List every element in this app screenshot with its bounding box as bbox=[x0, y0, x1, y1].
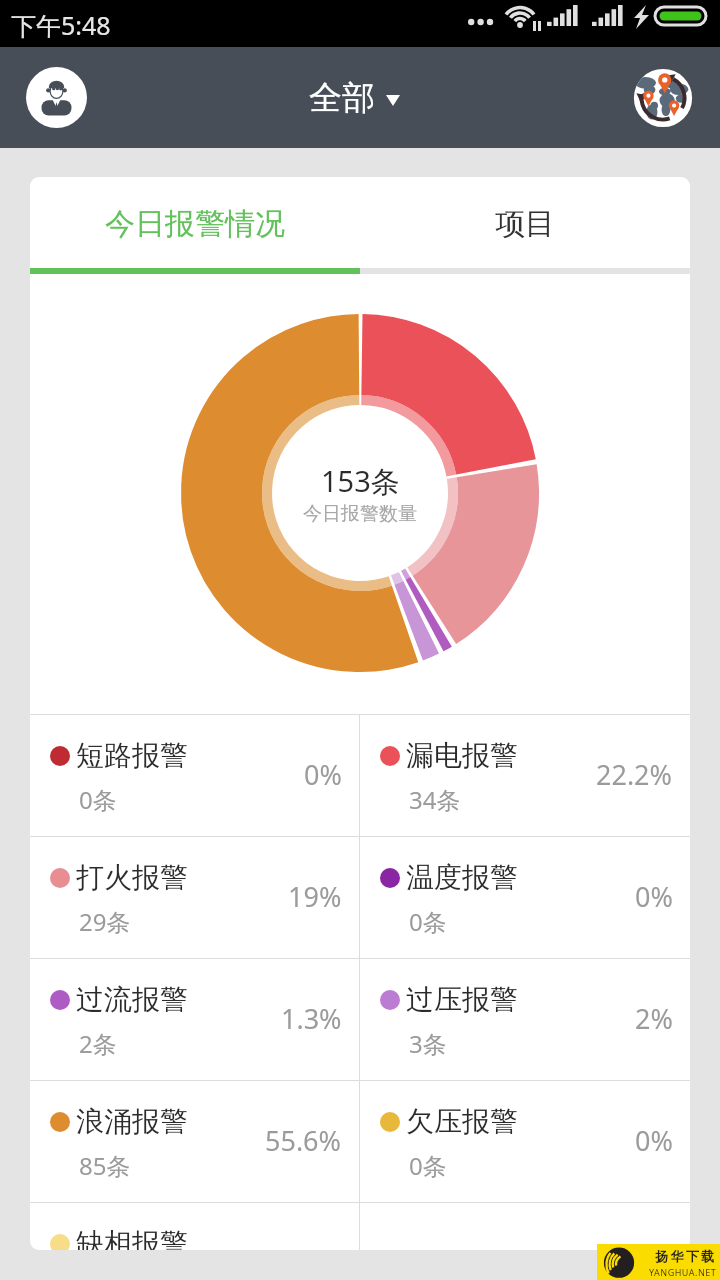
button[interactable]: 过流报警 bbox=[30, 959, 359, 1080]
staticText: 2% bbox=[635, 1000, 673, 1037]
staticText: 浪涌报警 bbox=[76, 1104, 188, 1139]
staticText: 漏电报警 bbox=[406, 738, 518, 773]
staticText: 2条 bbox=[79, 1027, 117, 1060]
button[interactable]: 缺相报警 bbox=[30, 1203, 359, 1250]
staticText: 153条 bbox=[321, 461, 400, 501]
staticText: 0% bbox=[304, 756, 342, 793]
button[interactable]: 温度报警 bbox=[360, 837, 690, 958]
staticText: 34条 bbox=[409, 783, 461, 816]
button[interactable]: 全部 bbox=[303, 71, 406, 125]
staticText: 3条 bbox=[409, 1027, 447, 1060]
staticText: 过流报警 bbox=[76, 982, 188, 1017]
staticText: 1.3% bbox=[281, 1000, 342, 1037]
staticText: 过压报警 bbox=[406, 982, 518, 1017]
button[interactable]: 欠压报警 bbox=[360, 1081, 690, 1202]
staticText: 打火报警 bbox=[76, 860, 188, 895]
staticText: 扬华下载 bbox=[655, 1248, 717, 1264]
button[interactable]: 项目 bbox=[360, 177, 690, 274]
staticText: 短路报警 bbox=[76, 738, 188, 773]
staticText: 项目 bbox=[495, 205, 555, 243]
staticText: 下午5:48 bbox=[11, 8, 111, 42]
staticText: 缺相报警 bbox=[76, 1226, 188, 1250]
staticText: 19% bbox=[288, 878, 342, 915]
staticText: 0% bbox=[635, 878, 673, 915]
staticText: 0条 bbox=[409, 905, 447, 938]
staticText: 温度报警 bbox=[406, 860, 518, 895]
staticText: 0条 bbox=[409, 1149, 447, 1182]
button[interactable]: 短路报警 bbox=[30, 715, 359, 836]
staticText: 0条 bbox=[79, 783, 117, 816]
button[interactable]: 今日报警情况 bbox=[30, 177, 360, 274]
staticText: 今日报警情况 bbox=[105, 205, 285, 243]
staticText: 今日报警数量 bbox=[303, 502, 417, 526]
staticText: 0% bbox=[635, 1122, 673, 1159]
button[interactable]: 打火报警 bbox=[30, 837, 359, 958]
staticText: 22.2% bbox=[596, 756, 673, 793]
staticText: YANGHUA.NET bbox=[649, 1266, 717, 1278]
button[interactable]: Map bbox=[631, 66, 695, 130]
staticText: 55.6% bbox=[265, 1122, 342, 1159]
button[interactable]: 过压报警 bbox=[360, 959, 690, 1080]
button[interactable]: 漏电报警 bbox=[360, 715, 690, 836]
button[interactable]: 浪涌报警 bbox=[30, 1081, 359, 1202]
staticText: 欠压报警 bbox=[406, 1104, 518, 1139]
button[interactable]: Profile bbox=[26, 67, 87, 128]
staticText: 85条 bbox=[79, 1149, 131, 1182]
staticText: 29条 bbox=[79, 905, 131, 938]
staticText: 全部 bbox=[309, 77, 375, 119]
